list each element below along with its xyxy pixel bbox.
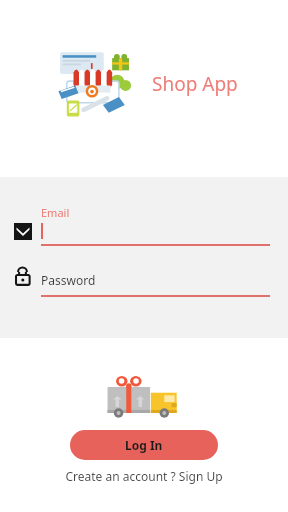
staticText: Email: [41, 205, 70, 220]
staticText: Password: [41, 272, 96, 288]
other: Email: [14, 223, 32, 240]
staticText: Shop App: [152, 71, 238, 97]
staticText: Create an account ? Sign Up: [65, 468, 223, 484]
button[interactable]: Email: [0, 205, 288, 267]
button[interactable]: Create an account ? Sign Up: [65, 468, 223, 484]
other: Password: [15, 267, 32, 286]
button[interactable]: Password: [0, 267, 288, 315]
button[interactable]: Log In: [70, 430, 218, 460]
staticText: Log In: [125, 437, 163, 453]
